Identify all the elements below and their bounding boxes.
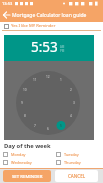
staticText: 13:53 xyxy=(2,1,13,6)
button[interactable]: 1 xyxy=(4,61,94,140)
button[interactable] xyxy=(2,10,12,20)
staticText: 12 xyxy=(46,75,50,79)
staticText: 8 xyxy=(24,114,26,118)
staticText: 5:53 xyxy=(31,38,58,56)
staticText: Yes I like MY Reminder xyxy=(11,23,56,29)
staticText: 7 xyxy=(34,124,36,128)
staticText: Thursday xyxy=(64,160,81,165)
staticText: 5 xyxy=(60,124,62,128)
staticText: 11 xyxy=(33,78,37,82)
staticText: PM xyxy=(60,49,65,53)
staticText: Mortgage Calculator loan guide xyxy=(12,12,87,19)
staticText: Monday xyxy=(11,152,26,157)
button[interactable]: SET REMINDER xyxy=(3,170,51,182)
staticText: AM xyxy=(60,45,65,49)
button[interactable]: Thursday xyxy=(56,159,100,166)
staticText: 3 xyxy=(73,101,75,105)
button[interactable]: Yes I like MY Reminder xyxy=(4,22,101,30)
staticText: 2 xyxy=(70,88,72,92)
staticText: 6 xyxy=(47,127,49,131)
staticText: Day of the week xyxy=(4,142,51,150)
staticText: Tuesday xyxy=(64,152,79,157)
staticText: Wednesday xyxy=(11,160,32,165)
button[interactable]: Tuesday xyxy=(56,151,100,158)
staticText: 4 xyxy=(70,114,72,118)
staticText: SET REMINDER xyxy=(12,173,43,179)
staticText: 1 xyxy=(60,78,62,82)
staticText: 9 xyxy=(21,101,23,105)
staticText: CANCEL xyxy=(68,173,86,179)
button[interactable]: Monday xyxy=(3,151,47,158)
button[interactable]: CANCEL xyxy=(55,170,98,182)
staticText: 10 xyxy=(23,88,27,92)
button[interactable]: Wednesday xyxy=(3,159,47,166)
